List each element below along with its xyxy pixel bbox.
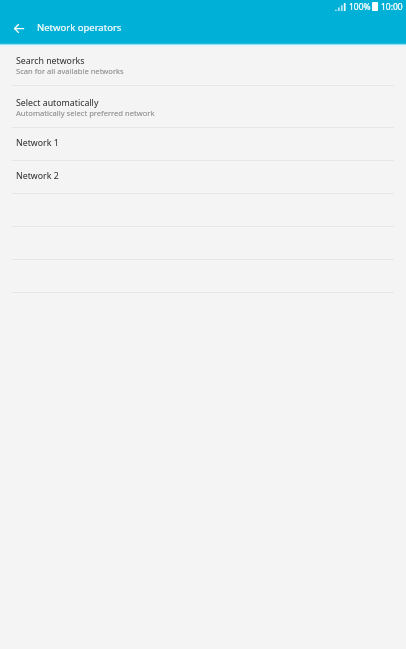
staticText: 10:00 [381, 1, 403, 13]
staticText: Network operators [37, 21, 122, 34]
staticText: Select automatically [16, 97, 99, 109]
button[interactable]: Network 2 [0, 161, 406, 193]
button[interactable]: Search networks [0, 44, 406, 85]
staticText: Network 2 [16, 170, 59, 182]
staticText: Network 1 [16, 137, 59, 149]
staticText: Automatically select preferred network [16, 108, 155, 118]
staticText: Search networks [16, 55, 85, 67]
button[interactable]: Navigate up [0, 13, 38, 42]
button[interactable]: Network 1 [0, 128, 406, 160]
staticText: 100% [349, 1, 371, 13]
staticText: Network 2 [16, 170, 59, 182]
staticText: Scan for all available networks [16, 66, 124, 76]
button[interactable]: Select automatically [0, 86, 406, 127]
staticText: Automatically select preferred network [16, 108, 155, 118]
staticText: Scan for all available networks [16, 66, 124, 76]
staticText: Select automatically [16, 97, 99, 109]
staticText: Search networks [16, 55, 85, 67]
staticText: Network 1 [16, 137, 59, 149]
